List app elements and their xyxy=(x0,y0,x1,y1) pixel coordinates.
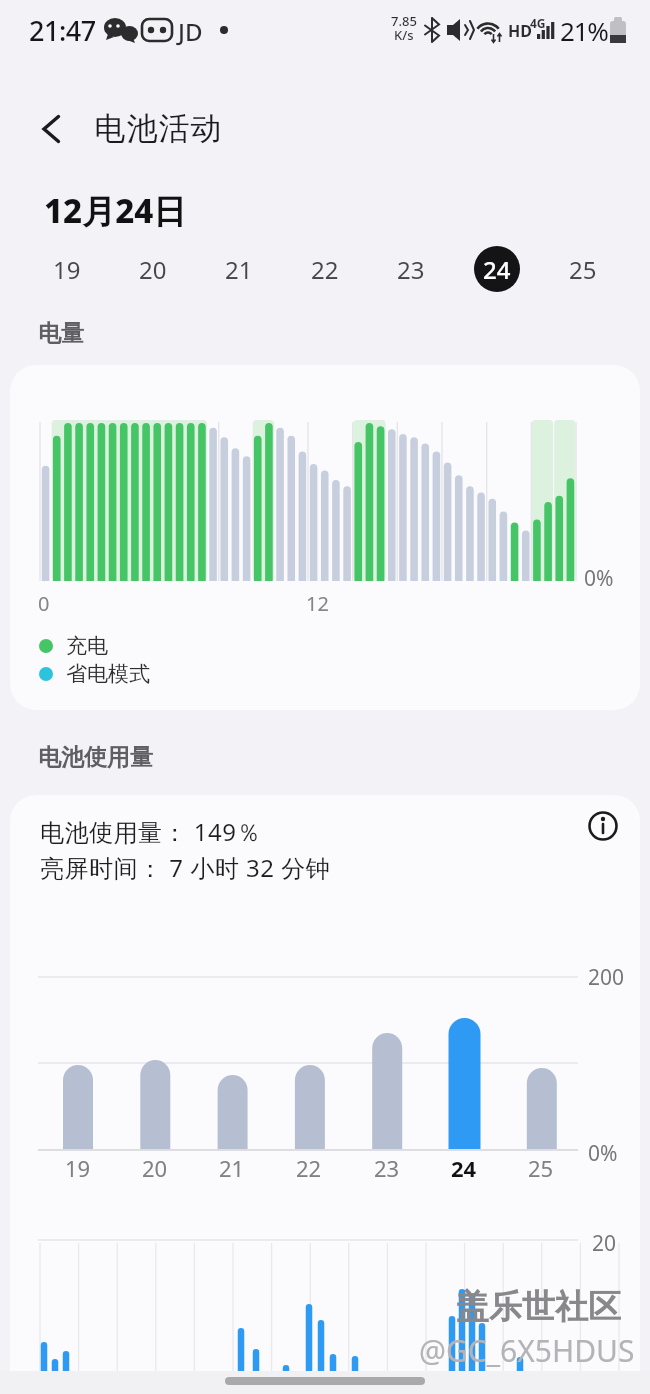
staticText: 23 xyxy=(397,253,425,286)
staticText: 21:47 xyxy=(29,12,96,49)
staticText: 省电模式 xyxy=(66,661,150,687)
staticText: 21 xyxy=(219,1153,245,1183)
button[interactable]: 19 xyxy=(44,246,90,292)
staticText: K/s xyxy=(394,26,414,44)
staticText: 24 xyxy=(483,253,511,286)
staticText: @GC_6X5HDUS xyxy=(419,1330,635,1371)
staticText: 25 xyxy=(528,1153,554,1183)
staticText: 22 xyxy=(296,1153,322,1183)
button[interactable] xyxy=(28,105,72,149)
staticText: 盖乐世社区 xyxy=(456,1286,621,1328)
staticText: 25 xyxy=(569,253,597,286)
staticText: 电池使用量 xyxy=(38,743,153,772)
staticText: 充电 xyxy=(66,633,108,659)
staticText: 200 xyxy=(588,963,625,992)
staticText: 23 xyxy=(374,1153,400,1183)
staticText: 20 xyxy=(142,1153,168,1183)
staticText: HD xyxy=(508,20,532,42)
staticText: 电池活动 xyxy=(94,109,222,148)
staticText: 21% xyxy=(560,13,608,48)
button[interactable]: 22 xyxy=(302,246,348,292)
staticText: 22 xyxy=(311,253,339,286)
staticText: 19 xyxy=(53,253,81,286)
staticText: 亮屏时间： 7 小时 32 分钟 xyxy=(40,851,331,884)
button[interactable]: 25 xyxy=(560,246,606,292)
button[interactable]: 23 xyxy=(388,246,434,292)
staticText: 19 xyxy=(65,1153,91,1183)
staticText: 20 xyxy=(139,253,167,286)
staticText: 电池使用量： 149％ xyxy=(40,815,261,848)
staticText: 0 xyxy=(38,590,50,617)
staticText: 0% xyxy=(588,1139,618,1168)
staticText: 12 xyxy=(306,590,329,617)
button[interactable]: 24 xyxy=(474,246,520,292)
staticText: 0% xyxy=(584,564,614,593)
staticText: 20 xyxy=(592,1229,617,1258)
button[interactable] xyxy=(581,804,625,848)
staticText: 24 xyxy=(451,1153,477,1183)
staticText: 4G xyxy=(530,15,546,31)
staticText: JD xyxy=(178,15,203,48)
staticText: 电量 xyxy=(38,319,84,348)
staticText: 7.85 xyxy=(391,12,417,30)
staticText: 12月24日 xyxy=(44,188,187,233)
button[interactable]: 21 xyxy=(216,246,262,292)
button[interactable]: 20 xyxy=(130,246,176,292)
staticText: 21 xyxy=(225,253,253,286)
